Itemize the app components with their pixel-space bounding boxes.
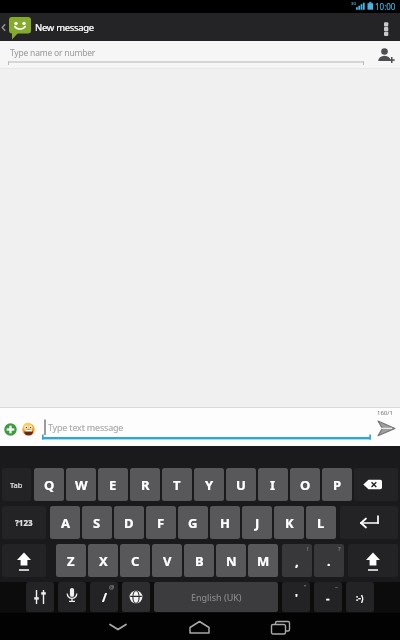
- button[interactable]: Q: [34, 468, 64, 501]
- button[interactable]: R: [130, 468, 160, 501]
- button[interactable]: G: [178, 506, 208, 539]
- staticText: T: [173, 476, 181, 494]
- button[interactable]: W: [66, 468, 96, 501]
- button[interactable]: Z: [56, 544, 86, 577]
- staticText: S: [93, 514, 101, 532]
- button[interactable]: N: [216, 544, 246, 577]
- button[interactable]: P: [322, 468, 352, 501]
- staticText: /: [102, 589, 107, 605]
- button[interactable]: L: [306, 506, 336, 539]
- staticText: ": [304, 583, 307, 591]
- staticText: Y: [205, 476, 214, 494]
- staticText: X: [99, 552, 108, 570]
- button[interactable]: K: [274, 506, 304, 539]
- staticText: –: [335, 583, 339, 591]
- button[interactable]: [122, 582, 150, 612]
- staticText: !: [307, 545, 309, 553]
- button[interactable]: O: [290, 468, 320, 501]
- staticText: .: [327, 552, 331, 570]
- staticText: W: [75, 476, 88, 494]
- staticText: P: [333, 476, 342, 494]
- staticText: 160/1: [377, 409, 393, 417]
- button[interactable]: [0, 13, 34, 41]
- button[interactable]: X: [88, 544, 118, 577]
- button[interactable]: Type name or number: [0, 41, 400, 68]
- staticText: Z: [67, 552, 75, 570]
- button[interactable]: ?123: [2, 506, 46, 539]
- staticText: English (UK): [191, 591, 242, 603]
- button[interactable]: S: [82, 506, 112, 539]
- staticText: O: [300, 476, 311, 494]
- staticText: C: [131, 552, 140, 570]
- button[interactable]: Y: [194, 468, 224, 501]
- staticText: J: [255, 514, 260, 532]
- staticText: K: [285, 514, 294, 532]
- staticText: :-): [356, 592, 364, 603]
- button[interactable]: B: [184, 544, 214, 577]
- button[interactable]: [42, 409, 371, 445]
- staticText: ?: [338, 545, 341, 553]
- button[interactable]: [102, 613, 134, 640]
- button[interactable]: :-): [346, 582, 374, 612]
- staticText: 3G: [351, 1, 357, 6]
- button[interactable]: ,: [282, 544, 312, 577]
- button[interactable]: [183, 613, 216, 640]
- button[interactable]: C: [120, 544, 150, 577]
- staticText: ?123: [15, 517, 33, 528]
- button[interactable]: [348, 544, 398, 577]
- button[interactable]: [372, 408, 400, 445]
- staticText: ,: [295, 552, 299, 570]
- staticText: D: [124, 514, 134, 532]
- button[interactable]: E: [98, 468, 128, 501]
- button[interactable]: H: [210, 506, 240, 539]
- staticText: H: [220, 514, 230, 532]
- staticText: Tab: [10, 480, 23, 490]
- button[interactable]: J: [242, 506, 272, 539]
- button[interactable]: -: [314, 582, 342, 612]
- button[interactable]: M: [248, 544, 278, 577]
- staticText: V: [163, 552, 172, 570]
- staticText: A: [61, 514, 70, 532]
- button[interactable]: I: [258, 468, 288, 501]
- staticText: @: [109, 583, 115, 591]
- button[interactable]: English (UK): [154, 582, 278, 612]
- staticText: I: [270, 476, 276, 494]
- staticText: E: [109, 476, 117, 494]
- staticText: Q: [44, 476, 55, 494]
- staticText: F: [157, 514, 165, 532]
- staticText: Type text message: [48, 421, 124, 433]
- button[interactable]: A: [50, 506, 80, 539]
- button[interactable]: [265, 613, 297, 640]
- button[interactable]: [354, 468, 398, 501]
- staticText: R: [141, 476, 150, 494]
- button[interactable]: [372, 43, 398, 67]
- button[interactable]: [26, 582, 54, 612]
- staticText: ': [295, 590, 298, 605]
- staticText: N: [226, 552, 237, 570]
- button[interactable]: .: [314, 544, 344, 577]
- button[interactable]: /: [90, 582, 118, 612]
- button[interactable]: [58, 582, 86, 612]
- button[interactable]: [2, 544, 46, 577]
- staticText: New message: [35, 21, 94, 34]
- button[interactable]: [340, 506, 398, 539]
- staticText: L: [317, 514, 325, 532]
- staticText: G: [188, 514, 198, 532]
- staticText: M: [257, 552, 270, 570]
- button[interactable]: [376, 13, 400, 41]
- button[interactable]: Tab: [2, 468, 31, 501]
- button[interactable]: V: [152, 544, 182, 577]
- button[interactable]: T: [162, 468, 192, 501]
- button[interactable]: D: [114, 506, 144, 539]
- button[interactable]: ': [282, 582, 310, 612]
- staticText: 10:00: [375, 1, 396, 12]
- button[interactable]: U: [226, 468, 256, 501]
- button[interactable]: F: [146, 506, 176, 539]
- staticText: B: [195, 552, 204, 570]
- staticText: -: [326, 590, 330, 605]
- staticText: U: [236, 476, 246, 494]
- staticText: Type name or number: [10, 47, 96, 59]
- button[interactable]: [20, 421, 37, 438]
- button[interactable]: [2, 421, 19, 438]
